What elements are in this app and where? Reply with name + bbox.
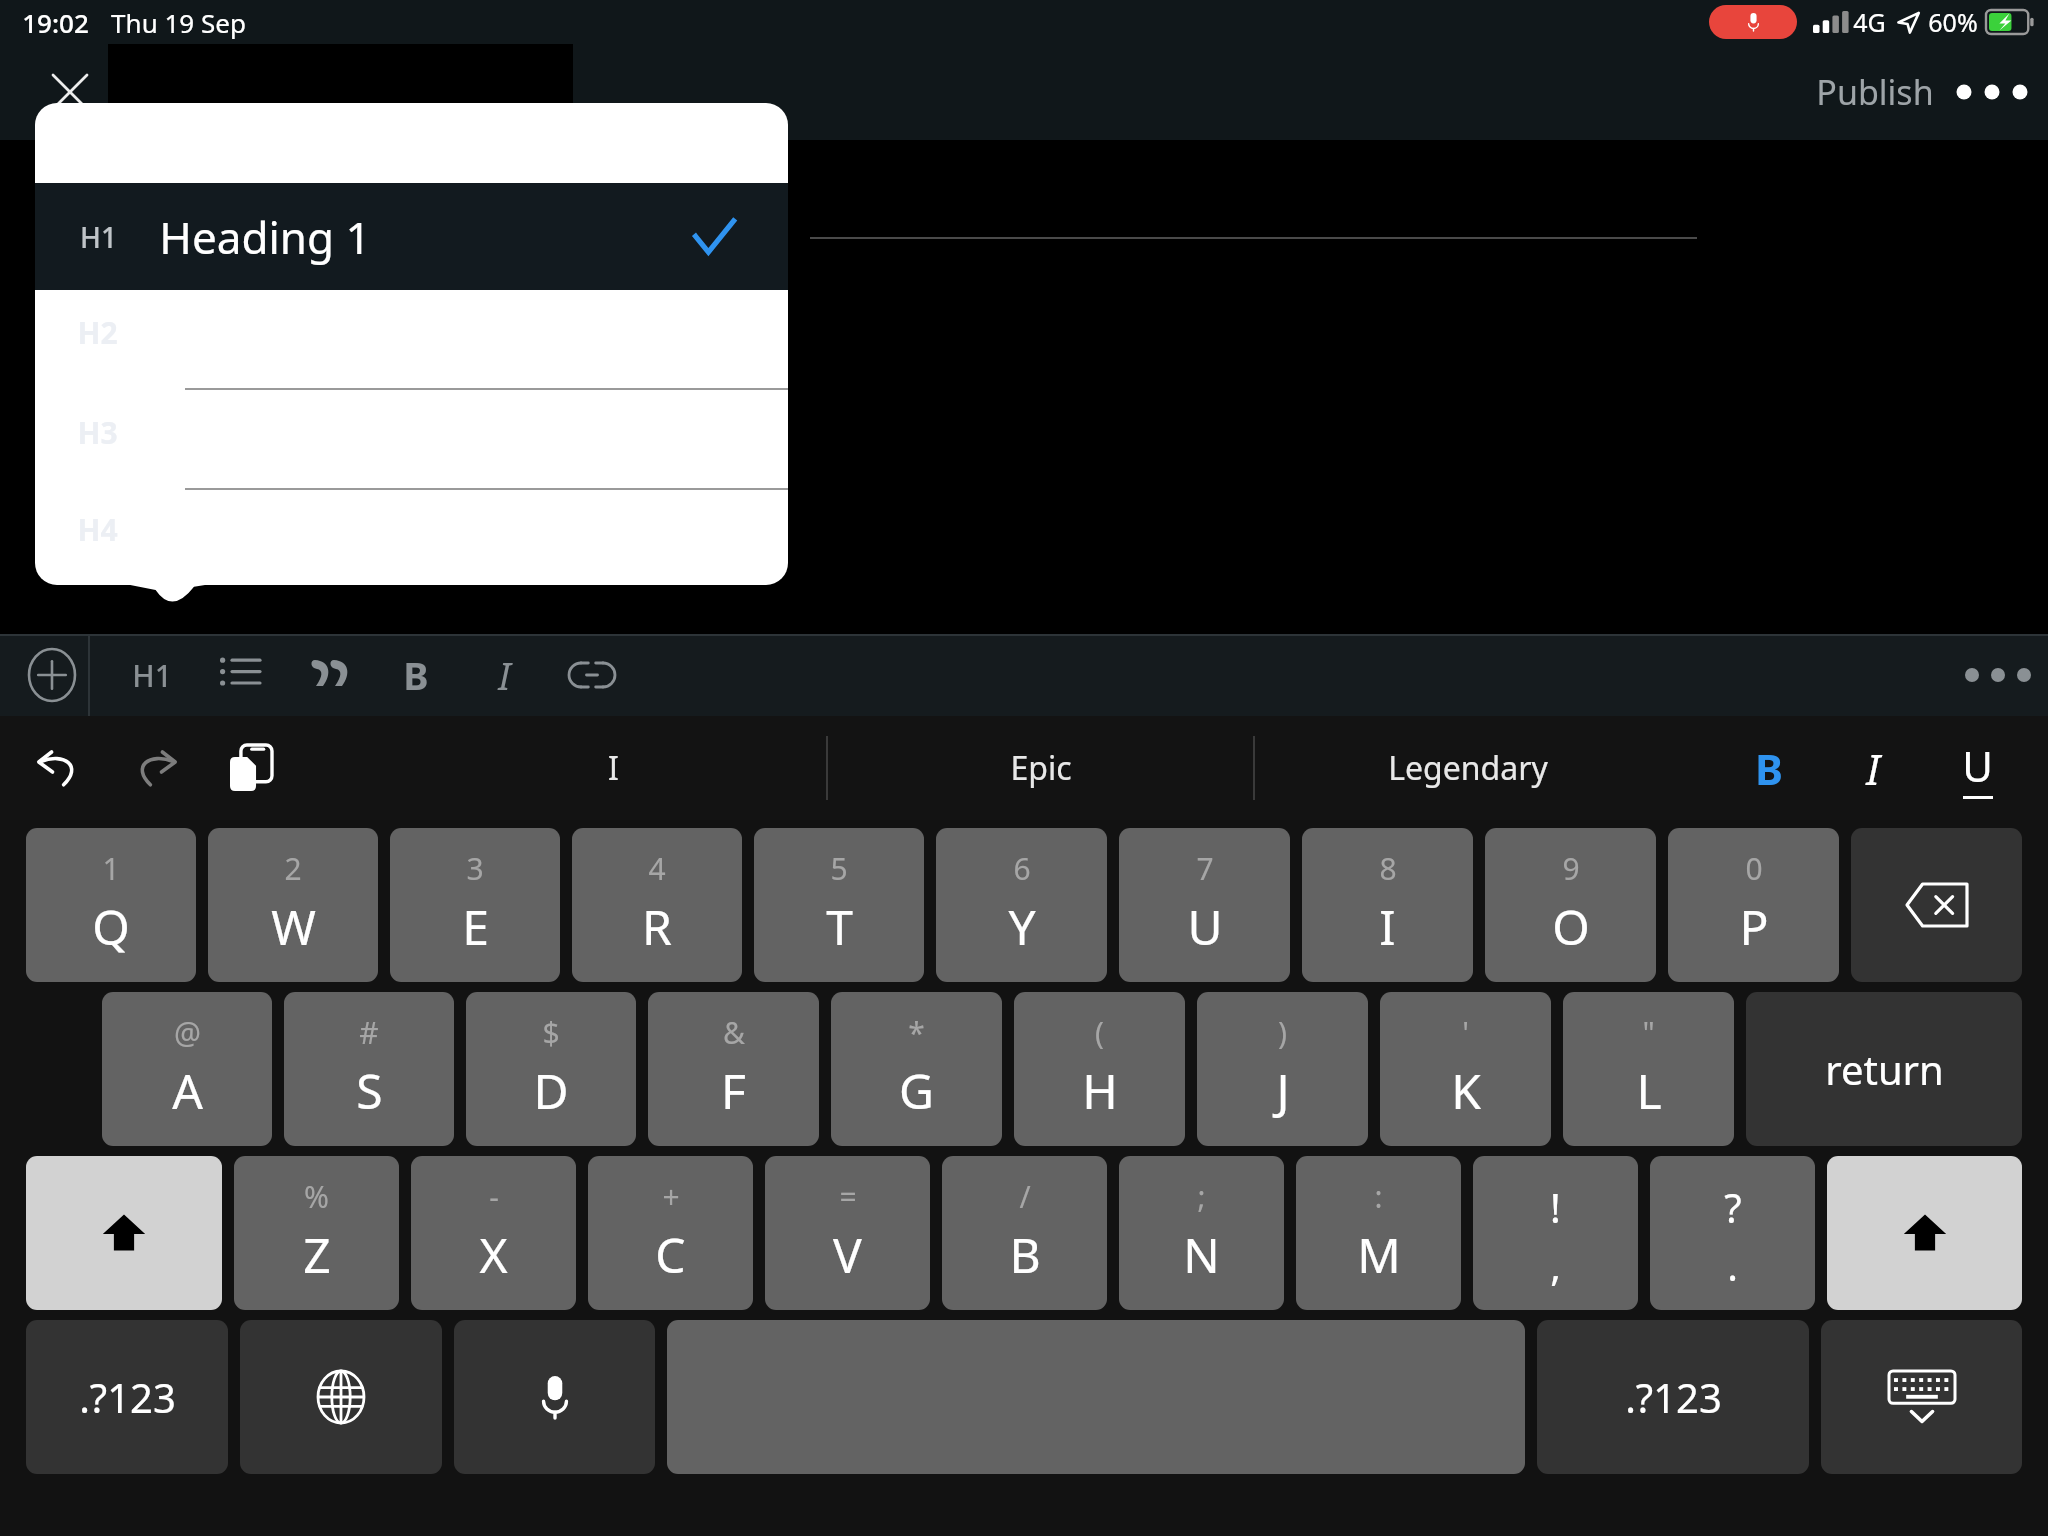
button[interactable]: I (400, 716, 826, 820)
button[interactable]: Backspace (1851, 828, 2022, 982)
staticText: O (1552, 894, 1590, 959)
button[interactable]: Publish (1806, 61, 1944, 123)
staticText: # (359, 1012, 379, 1053)
button[interactable]: Shift (1827, 1156, 2022, 1310)
staticText: ? (1724, 1180, 1742, 1234)
button[interactable]: Hide keyboard (1821, 1320, 2022, 1474)
staticText: 0 (1745, 848, 1763, 889)
button[interactable]: More options (1964, 64, 2020, 120)
staticText: I (1379, 894, 1396, 959)
button[interactable]: Paste (214, 731, 288, 805)
button[interactable]: : (1296, 1156, 1461, 1310)
staticText: 19:02 (22, 5, 89, 40)
button[interactable]: 3 (390, 828, 560, 982)
button[interactable]: 9 (1485, 828, 1656, 982)
button[interactable]: 8 (1302, 828, 1473, 982)
button[interactable]: ! (1473, 1156, 1638, 1310)
staticText: G (899, 1058, 934, 1123)
staticText: 60% (1928, 5, 1978, 39)
button[interactable]: Link (548, 634, 636, 716)
button[interactable]: Italic (460, 634, 548, 716)
button[interactable]: Bold (1732, 731, 1806, 805)
staticText: ( (1095, 1012, 1104, 1053)
button[interactable]: Return (1746, 992, 2022, 1146)
staticText: + (662, 1176, 680, 1217)
button[interactable]: Shift (26, 1156, 222, 1310)
button[interactable]: 2 (208, 828, 378, 982)
button[interactable]: ; (1119, 1156, 1284, 1310)
button[interactable]: ( (1014, 992, 1185, 1146)
button[interactable]: Redo (118, 731, 192, 805)
staticText: , (1550, 1238, 1561, 1292)
staticText: N (1183, 1222, 1220, 1287)
button[interactable]: * (831, 992, 1002, 1146)
button[interactable]: Legendary (1255, 716, 1680, 820)
button[interactable]: + (588, 1156, 753, 1310)
staticText: Q (92, 894, 130, 959)
staticText: Heading 1 (159, 207, 371, 267)
staticText: 2 (284, 848, 302, 889)
staticText: C (655, 1222, 686, 1287)
button[interactable]: Underline (1940, 731, 2014, 805)
button[interactable]: / (942, 1156, 1107, 1310)
staticText: .?123 (1625, 1370, 1722, 1424)
staticText: H (1082, 1058, 1118, 1123)
button[interactable]: % (234, 1156, 399, 1310)
button[interactable]: 5 (754, 828, 924, 982)
staticText: B (1755, 740, 1783, 797)
button[interactable]: - (411, 1156, 576, 1310)
button[interactable]: 7 (1119, 828, 1290, 982)
button[interactable]: H1 (35, 183, 788, 290)
staticText: A (172, 1058, 203, 1123)
button[interactable]: 6 (936, 828, 1107, 982)
staticText: ' (1462, 1012, 1469, 1053)
button[interactable]: H2 (35, 290, 788, 390)
button[interactable]: Undo (22, 731, 96, 805)
staticText: I (608, 746, 619, 790)
button[interactable]: Bulleted list (196, 634, 284, 716)
button[interactable]: Close (42, 64, 98, 120)
button[interactable]: H4 (35, 490, 788, 585)
staticText: 1 (102, 848, 120, 889)
button[interactable]: " (1563, 992, 1734, 1146)
button[interactable]: Epic (828, 716, 1253, 820)
staticText: H3 (77, 412, 118, 453)
button[interactable]: More formatting (1962, 639, 2034, 711)
staticText: Epic (1010, 746, 1072, 790)
staticText: R (642, 894, 672, 959)
staticText: 5 (830, 848, 848, 889)
button[interactable]: Quote (284, 634, 372, 716)
button[interactable]: Switch keyboard (240, 1320, 442, 1474)
staticText: H4 (77, 509, 118, 550)
button[interactable]: 1 (26, 828, 196, 982)
button[interactable]: H3 (35, 390, 788, 490)
button[interactable]: # (284, 992, 454, 1146)
button[interactable]: Bold (372, 634, 460, 716)
button[interactable]: 4 (572, 828, 742, 982)
button[interactable]: ? (1650, 1156, 1815, 1310)
button[interactable]: Numbers and symbols (26, 1320, 228, 1474)
button[interactable]: = (765, 1156, 930, 1310)
staticText: & (723, 1012, 745, 1053)
button[interactable]: H1 (108, 634, 196, 716)
staticText: D (533, 1058, 569, 1123)
button[interactable]: Numbers and symbols (1537, 1320, 1809, 1474)
button[interactable]: 0 (1668, 828, 1839, 982)
button[interactable]: $ (466, 992, 636, 1146)
staticText: P (1739, 894, 1769, 959)
staticText: W (271, 894, 316, 959)
staticText: Publish (1816, 69, 1934, 115)
staticText: .?123 (79, 1370, 176, 1424)
staticText: - (489, 1176, 499, 1217)
button[interactable]: Italic (1836, 731, 1910, 805)
button[interactable]: Dictate (454, 1320, 655, 1474)
button[interactable]: ) (1197, 992, 1368, 1146)
button[interactable]: ' (1380, 992, 1551, 1146)
staticText: . (1727, 1238, 1738, 1292)
staticText: E (462, 894, 489, 959)
staticText: B (1009, 1222, 1041, 1287)
button[interactable]: & (648, 992, 819, 1146)
button[interactable]: @ (102, 992, 272, 1146)
button[interactable]: Insert block (16, 639, 88, 711)
